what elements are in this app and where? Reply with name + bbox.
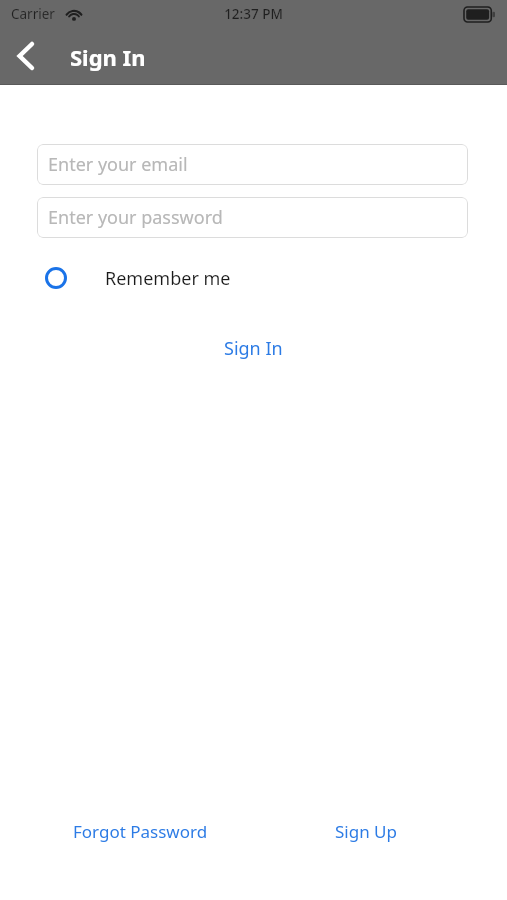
staticText: Carrier: [11, 5, 55, 23]
button[interactable]: Back: [2, 32, 50, 80]
button[interactable]: Sign In: [0, 328, 507, 368]
staticText: Enter your email: [48, 152, 188, 177]
button[interactable]: Enter your password: [37, 197, 468, 238]
staticText: Enter your password: [48, 205, 223, 230]
staticText: Sign Up: [335, 820, 397, 843]
staticText: Sign In: [224, 336, 283, 361]
button[interactable]: Enter your email: [37, 144, 468, 185]
staticText: Forgot Password: [73, 820, 208, 843]
staticText: Sign In: [70, 42, 146, 72]
staticText: 12:37 PM: [0, 5, 507, 23]
button[interactable]: Forgot Password: [40, 812, 240, 850]
button[interactable]: Remember me: [37, 256, 287, 300]
button[interactable]: Sign Up: [296, 812, 436, 850]
staticText: Remember me: [105, 266, 231, 291]
